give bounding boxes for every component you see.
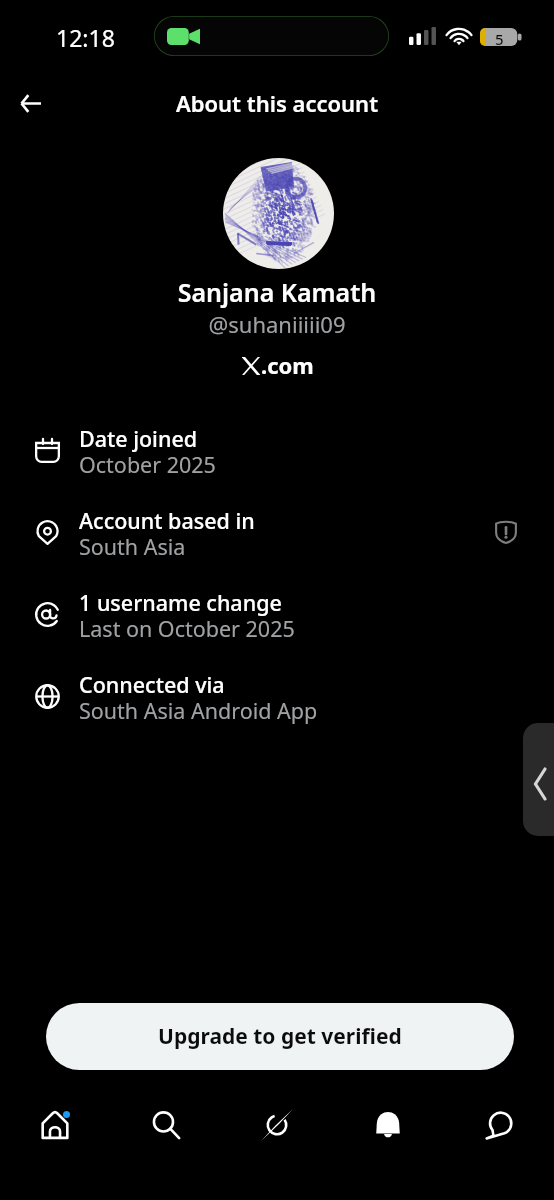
button[interactable]: Upgrade to get verified xyxy=(46,1003,514,1070)
button[interactable]: Back xyxy=(8,80,54,126)
staticText: Connected via xyxy=(79,670,225,699)
staticText: 5 xyxy=(495,29,504,49)
staticText: South Asia xyxy=(79,532,186,561)
staticText: South Asia Android App xyxy=(79,696,318,725)
staticText: Date joined xyxy=(79,424,198,453)
button[interactable]: Notifications xyxy=(332,1105,443,1165)
staticText: @suhaniiiii09 xyxy=(0,309,554,339)
staticText: Last on October 2025 xyxy=(79,614,295,643)
button[interactable]: Date joined xyxy=(0,410,554,492)
button[interactable]: Account information xyxy=(493,518,519,544)
staticText: Account based in xyxy=(79,506,255,535)
staticText: 12:18 xyxy=(56,22,115,53)
button[interactable]: Messages xyxy=(443,1105,554,1165)
staticText: October 2025 xyxy=(79,450,216,479)
staticText: 1 username change xyxy=(79,588,282,617)
button[interactable]: Connected via xyxy=(0,656,554,738)
staticText: .com xyxy=(261,350,314,380)
button[interactable]: Open panel xyxy=(523,723,554,836)
button[interactable]: 1 username change xyxy=(0,574,554,656)
staticText: Sanjana Kamath xyxy=(0,275,554,309)
button[interactable]: Grok xyxy=(221,1105,332,1165)
button[interactable]: Account based in xyxy=(0,492,554,574)
staticText: About this account xyxy=(0,88,554,118)
button[interactable]: Search xyxy=(110,1105,221,1165)
button[interactable]: Home xyxy=(0,1105,110,1165)
staticText: Upgrade to get verified xyxy=(158,1022,402,1051)
